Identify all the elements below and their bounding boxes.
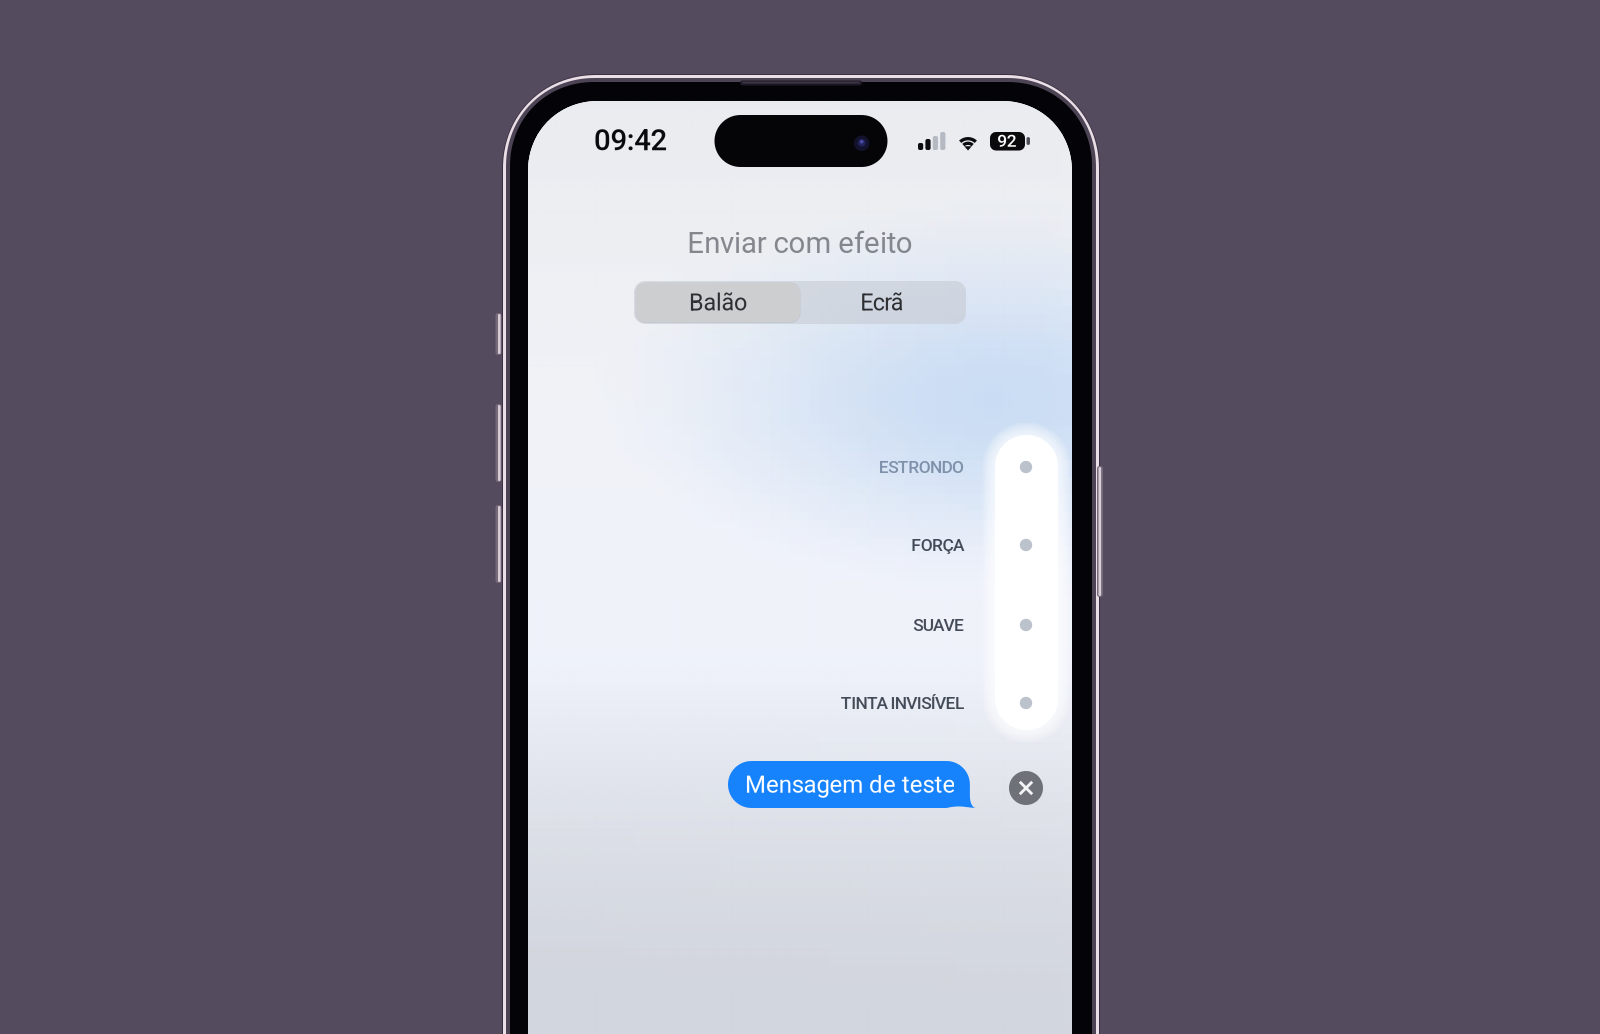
button[interactable]: TINTA INVISÍVEL [664, 678, 1058, 728]
staticText: FORÇA [911, 535, 964, 555]
staticText: ESTRONDO [879, 457, 964, 477]
staticText: 92 [997, 131, 1017, 151]
staticText: SUAVE [913, 615, 964, 635]
staticText: Ecrã [860, 289, 904, 316]
staticText: TINTA INVISÍVEL [841, 693, 964, 713]
staticText: Mensagem de teste [745, 770, 955, 798]
staticText: 09:42 [594, 123, 668, 157]
staticText: Enviar com efeito [687, 226, 913, 260]
button[interactable]: FORÇA [664, 520, 1058, 570]
button[interactable]: Cancelar efeito [1009, 771, 1043, 805]
button[interactable]: ESTRONDO [664, 442, 1058, 492]
button[interactable]: Ecrã [800, 283, 964, 322]
button[interactable]: Balão [636, 283, 800, 322]
button[interactable]: SUAVE [664, 600, 1058, 650]
staticText: Balão [689, 289, 747, 316]
